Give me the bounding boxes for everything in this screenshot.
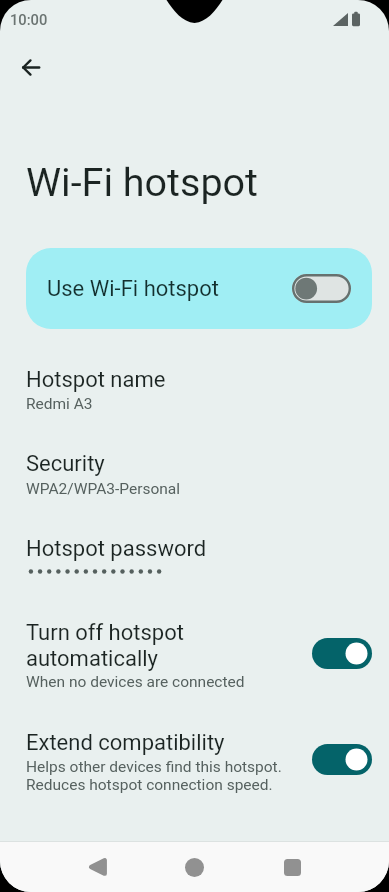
staticText: WPA2/WPA3-Personal <box>26 480 181 498</box>
button[interactable]: Recent apps <box>268 842 316 892</box>
button[interactable]: Back <box>73 842 121 892</box>
staticText: Extend compatibility <box>26 730 225 756</box>
button[interactable]: Use Wi-Fi hotspot <box>292 274 351 303</box>
staticText: Use Wi-Fi hotspot <box>47 276 219 302</box>
staticText: Wi-Fi hotspot <box>26 159 259 205</box>
staticText: Hotspot name <box>26 367 166 393</box>
button[interactable]: Use Wi-Fi hotspot <box>26 248 372 329</box>
staticText: Hotspot password <box>26 536 207 562</box>
staticText: Redmi A3 <box>26 395 93 413</box>
button[interactable]: Toggle <box>312 744 372 775</box>
button[interactable]: Home <box>170 842 218 892</box>
staticText: When no devices are connected <box>26 673 245 691</box>
staticText: Helps other devices find this hotspot. R… <box>26 758 282 794</box>
staticText: Security <box>26 451 105 477</box>
button[interactable]: Toggle <box>312 638 372 669</box>
staticText: Turn off hotspot automatically <box>26 620 184 672</box>
button[interactable]: Back <box>9 45 53 89</box>
staticText: 10:00 <box>10 11 48 28</box>
